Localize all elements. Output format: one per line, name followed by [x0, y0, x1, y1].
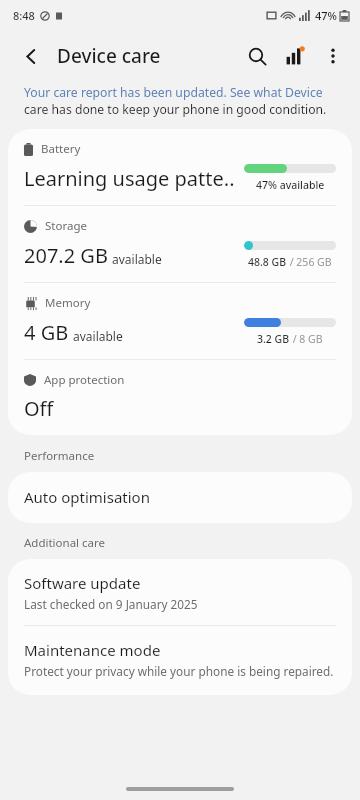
staticText: Device care — [57, 43, 161, 69]
button[interactable]: App protection — [8, 360, 352, 435]
staticText: / 8 GB — [290, 332, 323, 346]
button[interactable]: Care report — [276, 37, 314, 75]
staticText: Protect your privacy while your phone is… — [24, 663, 334, 679]
staticText: Auto optimisation — [24, 487, 150, 507]
staticText: available — [112, 251, 162, 267]
staticText: care has done to keep your phone in good… — [24, 101, 327, 118]
button[interactable]: Battery — [8, 129, 352, 205]
staticText: 47% — [315, 8, 337, 23]
staticText: Off — [24, 395, 54, 422]
button[interactable]: Back — [14, 39, 48, 73]
staticText: 3.2 GB — [257, 332, 290, 346]
button[interactable]: Memory — [8, 283, 352, 359]
staticText: Performance — [24, 448, 95, 464]
staticText: Memory — [45, 295, 91, 311]
staticText: Learning usage patte.. — [24, 165, 235, 192]
staticText: Battery — [41, 141, 81, 157]
button[interactable]: Auto optimisation — [8, 472, 352, 523]
staticText: Last checked on 9 January 2025 — [24, 596, 198, 612]
button[interactable]: Maintenance mode — [8, 626, 352, 695]
staticText: 47% available — [256, 178, 325, 192]
staticText: available — [73, 328, 123, 344]
button[interactable]: Search — [238, 37, 276, 75]
staticText: App protection — [44, 372, 125, 388]
staticText: 4 GB — [24, 319, 69, 346]
staticText: Maintenance mode — [24, 640, 161, 660]
button[interactable]: Storage — [8, 206, 352, 282]
staticText: Additional care — [24, 535, 106, 551]
staticText: 207.2 GB — [24, 242, 108, 269]
button[interactable]: Software update — [8, 559, 352, 625]
staticText: 48.8 GB — [248, 255, 287, 269]
button[interactable]: More options — [314, 37, 352, 75]
staticText: 8:48 — [13, 8, 35, 23]
staticText: Software update — [24, 573, 141, 593]
staticText: / 256 GB — [287, 255, 332, 269]
staticText: Storage — [45, 218, 87, 234]
staticText: Your care report has been updated. See w… — [24, 84, 323, 101]
